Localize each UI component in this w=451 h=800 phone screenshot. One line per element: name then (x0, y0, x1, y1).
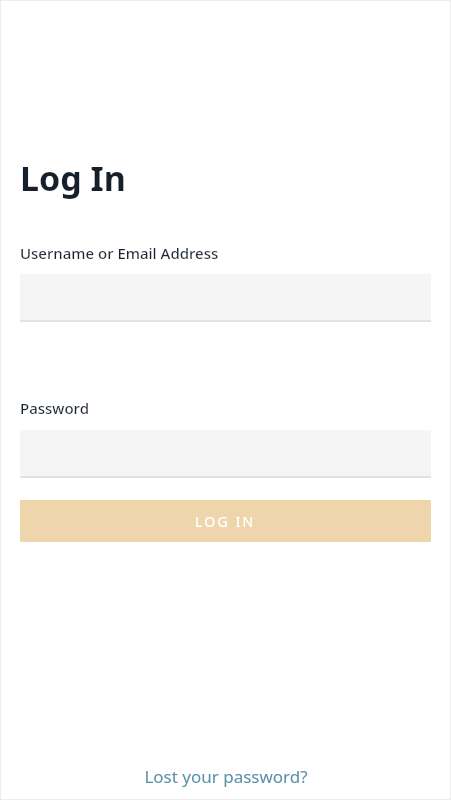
staticText: Log In (20, 155, 126, 201)
button[interactable]: LOG IN (20, 500, 431, 542)
staticText: Username or Email Address (20, 243, 219, 263)
staticText: Password (20, 398, 89, 418)
button[interactable]: Text input field (20, 430, 431, 478)
staticText: Lost your password? (144, 765, 308, 788)
staticText: LOG IN (195, 512, 256, 531)
button[interactable]: Lost your password? (0, 765, 451, 788)
button[interactable]: Text input field (20, 274, 431, 322)
